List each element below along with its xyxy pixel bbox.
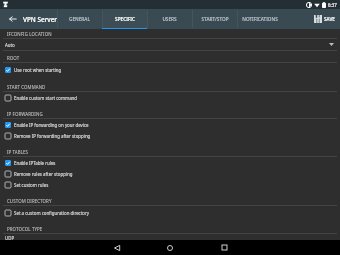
- staticText: Use root when starting: [14, 67, 62, 73]
- button[interactable]: SAVE: [309, 9, 340, 29]
- button[interactable]: Enable IP forwarding on your device: [0, 119, 340, 130]
- button[interactable]: NOTIFICATIONS: [237, 9, 282, 29]
- button[interactable]: Home: [153, 240, 187, 255]
- staticText: IP TABLES: [7, 149, 29, 155]
- staticText: UDP: [5, 235, 15, 240]
- staticText: ROOT: [7, 55, 20, 61]
- staticText: Enable custom start command: [14, 95, 78, 101]
- staticText: CUSTOM DIRECTORY: [7, 198, 52, 204]
- staticText: Set custom rules: [14, 182, 49, 188]
- button[interactable]: Recent apps: [207, 240, 241, 255]
- staticText: START COMMAND: [7, 84, 46, 90]
- staticText: Enable IP forwarding on your device: [14, 122, 89, 128]
- staticText: 6:37: [328, 2, 337, 8]
- button[interactable]: Remove rules after stopping: [0, 168, 340, 179]
- staticText: SAVE: [324, 16, 335, 22]
- button[interactable]: Enable custom start command: [0, 92, 340, 103]
- button[interactable]: Set custom rules: [0, 179, 340, 190]
- staticText: PROTOCOL TYPE: [7, 226, 43, 232]
- staticText: Remove rules after stopping: [14, 171, 73, 177]
- button[interactable]: Remove IP forwarding after stopping: [0, 130, 340, 141]
- staticText: NOTIFICATIONS: [242, 16, 278, 22]
- staticText: START/STOP: [201, 16, 229, 22]
- staticText: Remove IP forwarding after stopping: [14, 133, 91, 139]
- staticText: GENERAL: [69, 16, 90, 22]
- button[interactable]: Enable IPTable rules: [0, 157, 340, 168]
- staticText: IFCONFIG LOCATION: [7, 31, 52, 37]
- staticText: USERS: [162, 16, 177, 22]
- button[interactable]: Back: [100, 240, 134, 255]
- staticText: SPECIFIC: [115, 16, 135, 22]
- staticText: IP FORWARDING: [7, 111, 43, 117]
- button[interactable]: SPECIFIC: [102, 9, 147, 29]
- staticText: VPN Server: [23, 15, 58, 24]
- button[interactable]: USERS: [147, 9, 192, 29]
- button[interactable]: Set a custom configuration directory: [0, 207, 340, 218]
- button[interactable]: GENERAL: [57, 9, 102, 29]
- button[interactable]: Use root when starting: [0, 64, 340, 75]
- button[interactable]: UDP: [0, 235, 340, 240]
- staticText: Auto: [5, 42, 15, 48]
- staticText: Set a custom configuration directory: [14, 210, 90, 216]
- staticText: Enable IPTable rules: [14, 160, 56, 166]
- button[interactable]: Back: [3, 9, 23, 29]
- button[interactable]: START/STOP: [192, 9, 237, 29]
- button[interactable]: Auto: [0, 39, 340, 50]
